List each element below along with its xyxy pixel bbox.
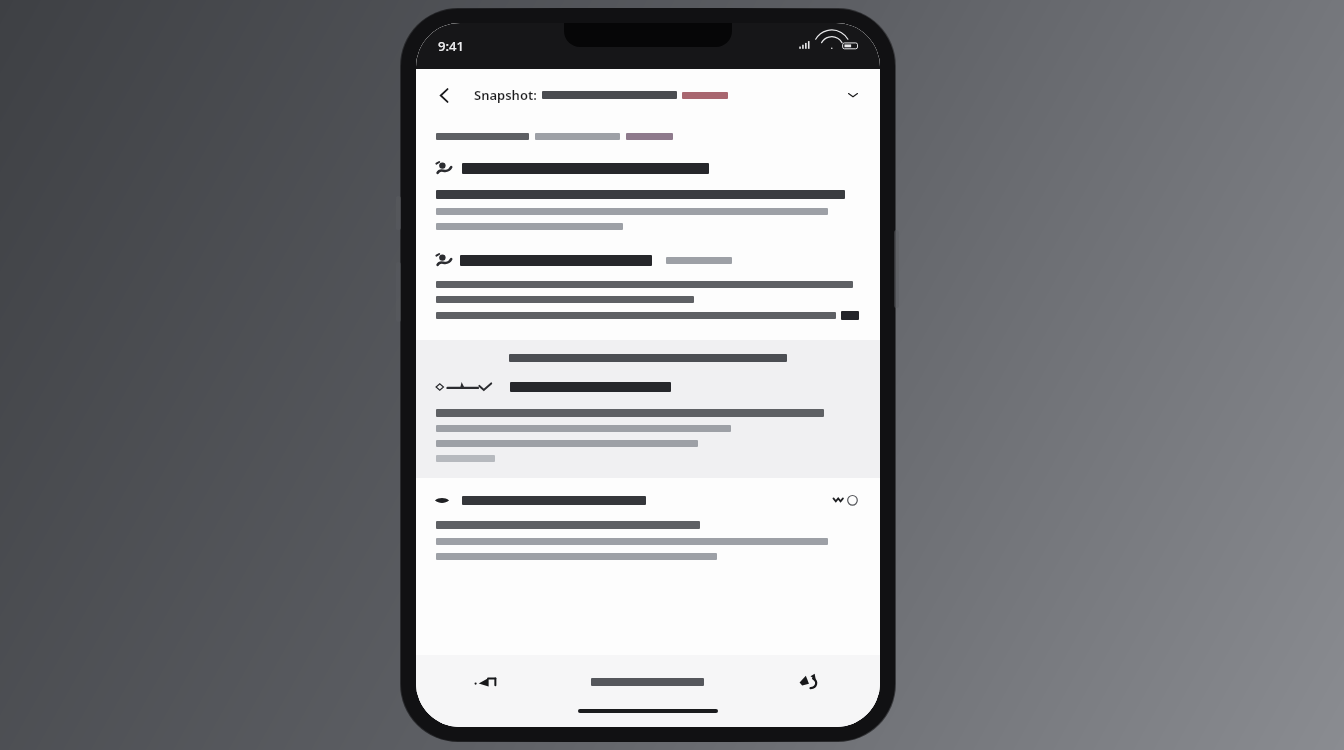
button[interactable]: Previous (416, 655, 556, 709)
button[interactable] (434, 250, 860, 270)
button[interactable]: Back (424, 75, 464, 115)
staticText: Snapshot: (474, 86, 537, 104)
button[interactable] (434, 492, 862, 508)
button[interactable]: Share (739, 655, 880, 709)
button[interactable]: Expand (836, 78, 870, 112)
button[interactable] (556, 655, 739, 709)
button[interactable] (432, 378, 860, 396)
button[interactable] (434, 158, 860, 178)
staticText: 9:41 (438, 37, 464, 55)
